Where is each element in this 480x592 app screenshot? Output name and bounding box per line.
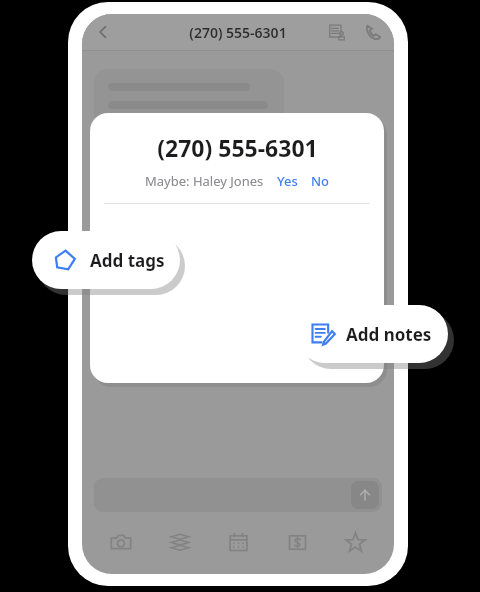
staticText: Add notes	[346, 323, 432, 346]
button[interactable]: Contact details	[322, 17, 352, 47]
button[interactable]: No	[311, 172, 330, 190]
button[interactable]: Yes	[277, 172, 298, 190]
button[interactable]: Call	[358, 17, 388, 47]
button[interactable]: Payments	[274, 524, 320, 560]
button[interactable]: Calendar	[215, 524, 261, 560]
staticText: (270) 555-6301	[189, 23, 287, 42]
staticText: No	[311, 172, 330, 190]
staticText: Yes	[277, 172, 298, 190]
button[interactable]: Send	[94, 478, 382, 512]
button[interactable]: Add tags	[32, 231, 180, 289]
staticText: Add tags	[90, 249, 165, 272]
button[interactable]: Back	[88, 17, 118, 47]
button[interactable]: Send	[351, 481, 379, 509]
button[interactable]: Layers	[157, 524, 203, 560]
button[interactable]: Camera	[98, 524, 144, 560]
staticText: Maybe: Haley Jones	[145, 172, 264, 190]
button[interactable]: Favorites	[332, 524, 378, 560]
staticText: (270) 555-6301	[157, 132, 318, 163]
button[interactable]: Add notes	[296, 305, 448, 363]
